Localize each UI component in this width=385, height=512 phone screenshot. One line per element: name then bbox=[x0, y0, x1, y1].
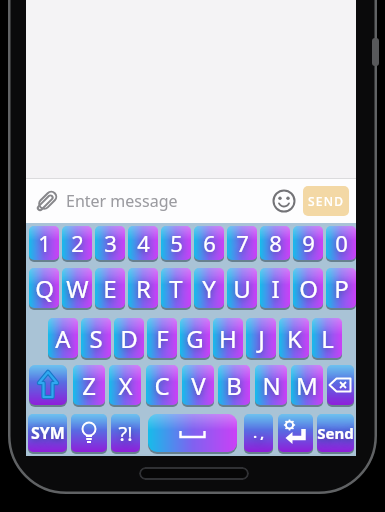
button[interactable]: C bbox=[146, 365, 178, 405]
button[interactable]: 1 bbox=[29, 226, 59, 260]
button[interactable]: 5 bbox=[161, 226, 191, 260]
button[interactable]: Y bbox=[194, 268, 224, 308]
button[interactable]: Z bbox=[73, 365, 105, 405]
button[interactable] bbox=[71, 414, 107, 452]
staticText: 9 bbox=[302, 228, 315, 258]
button[interactable] bbox=[29, 365, 67, 405]
button[interactable]: B bbox=[218, 365, 250, 405]
staticText: I bbox=[271, 272, 280, 305]
staticText: S bbox=[89, 322, 103, 355]
staticText: U bbox=[233, 272, 251, 305]
staticText: Enter message bbox=[66, 190, 178, 212]
button[interactable]: 6 bbox=[194, 226, 224, 260]
staticText: X bbox=[118, 369, 133, 402]
staticText: 0 bbox=[335, 228, 348, 258]
button[interactable]: U bbox=[227, 268, 257, 308]
staticText: Y bbox=[202, 272, 216, 305]
button[interactable]: 4 bbox=[128, 226, 158, 260]
button[interactable]: S bbox=[81, 318, 111, 358]
button[interactable]: Send bbox=[317, 414, 354, 452]
staticText: E bbox=[103, 272, 117, 305]
staticText: N bbox=[262, 369, 281, 402]
staticText: 7 bbox=[236, 228, 249, 258]
staticText: 2 bbox=[71, 228, 84, 258]
staticText: T bbox=[169, 272, 183, 305]
button[interactable]: D bbox=[114, 318, 144, 358]
staticText: H bbox=[219, 322, 237, 355]
button[interactable]: I bbox=[260, 268, 290, 308]
button[interactable]: J bbox=[246, 318, 276, 358]
staticText: 4 bbox=[137, 228, 150, 258]
staticText: 8 bbox=[269, 228, 282, 258]
button[interactable]: P bbox=[326, 268, 356, 308]
staticText: K bbox=[287, 322, 302, 355]
button[interactable]: W bbox=[62, 268, 92, 308]
staticText: R bbox=[136, 272, 151, 305]
staticText: 1 bbox=[38, 228, 51, 258]
staticText: . , bbox=[253, 424, 264, 442]
button[interactable]: Enter message bbox=[26, 179, 356, 223]
button[interactable]: M bbox=[291, 365, 323, 405]
button[interactable]: SEND bbox=[303, 186, 349, 216]
button[interactable]: A bbox=[48, 318, 78, 358]
button[interactable]: 9 bbox=[293, 226, 323, 260]
staticText: G bbox=[186, 322, 204, 355]
button[interactable]: R bbox=[128, 268, 158, 308]
button[interactable]: 0 bbox=[326, 226, 356, 260]
button[interactable]: ?! bbox=[111, 414, 140, 452]
staticText: Send bbox=[317, 423, 354, 443]
staticText: F bbox=[156, 322, 169, 355]
staticText: O bbox=[299, 272, 318, 305]
staticText: P bbox=[334, 272, 349, 305]
staticText: Z bbox=[82, 369, 96, 402]
staticText: M bbox=[296, 369, 318, 402]
staticText: C bbox=[154, 369, 170, 402]
staticText: 6 bbox=[203, 228, 216, 258]
button[interactable]: 7 bbox=[227, 226, 257, 260]
button[interactable] bbox=[278, 414, 313, 452]
staticText: J bbox=[258, 322, 265, 355]
button[interactable]: N bbox=[255, 365, 287, 405]
button[interactable]: E bbox=[95, 268, 125, 308]
staticText: Q bbox=[35, 272, 54, 305]
button[interactable]: L bbox=[312, 318, 342, 358]
button[interactable]: 8 bbox=[260, 226, 290, 260]
staticText: 5 bbox=[170, 228, 183, 258]
staticText: ?! bbox=[118, 420, 133, 447]
button[interactable]: V bbox=[182, 365, 214, 405]
staticText: W bbox=[66, 272, 89, 305]
button[interactable]: Q bbox=[29, 268, 59, 308]
button[interactable]: . , bbox=[244, 414, 273, 452]
button[interactable]: G bbox=[180, 318, 210, 358]
staticText: D bbox=[120, 322, 138, 355]
staticText: SEND bbox=[308, 193, 345, 209]
staticText: V bbox=[191, 369, 206, 402]
staticText: A bbox=[55, 322, 71, 355]
button[interactable]: H bbox=[213, 318, 243, 358]
button[interactable] bbox=[148, 414, 237, 452]
button[interactable]: 2 bbox=[62, 226, 92, 260]
button[interactable]: O bbox=[293, 268, 323, 308]
staticText: 3 bbox=[104, 228, 117, 258]
button[interactable]: T bbox=[161, 268, 191, 308]
button[interactable]: K bbox=[279, 318, 309, 358]
button[interactable] bbox=[327, 365, 354, 405]
staticText: B bbox=[226, 369, 242, 402]
button[interactable]: SYM bbox=[28, 414, 67, 452]
staticText: SYM bbox=[31, 422, 65, 444]
button[interactable]: X bbox=[109, 365, 141, 405]
staticText: L bbox=[321, 322, 334, 355]
button[interactable]: 3 bbox=[95, 226, 125, 260]
button[interactable]: F bbox=[147, 318, 177, 358]
